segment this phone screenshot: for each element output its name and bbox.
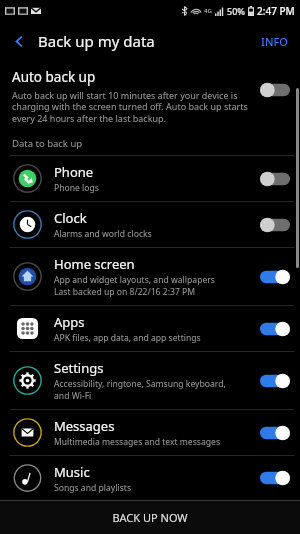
button[interactable]: Phone (0, 156, 300, 201)
button[interactable]: BACK UP NOW (0, 501, 300, 534)
staticText: Songs and playlists (54, 482, 131, 493)
staticText: Data to back up (12, 137, 83, 150)
staticText: 50% (227, 5, 245, 17)
button[interactable]: Apps (0, 306, 300, 351)
button[interactable]: Toggle off (260, 217, 290, 233)
staticText: and Wi-Fi (54, 390, 92, 402)
staticText: Auto back up (12, 68, 96, 86)
staticText: Alarms and world clocks (54, 228, 152, 240)
staticText: INFO (261, 34, 288, 49)
button[interactable]: Toggle on (260, 321, 290, 337)
button[interactable]: Toggle on (260, 470, 290, 486)
staticText: Settings (54, 359, 104, 377)
button[interactable]: Toggle off (260, 171, 290, 187)
button[interactable]: Clock (0, 202, 300, 247)
staticText: BACK UP NOW (112, 510, 188, 525)
button[interactable]: Messages (0, 410, 300, 455)
staticText: Back up my data (38, 31, 155, 51)
staticText: Accessibility, ringtone, Samsung keyboar… (54, 378, 226, 390)
staticText: 4G (204, 7, 212, 15)
staticText: Auto back up will start 10 minutes after… (12, 89, 254, 125)
staticText: Phone (54, 163, 94, 181)
button[interactable]: Toggle on (260, 425, 290, 441)
button[interactable]: Auto back up (0, 60, 300, 135)
button[interactable]: Home screen (0, 248, 300, 305)
staticText: Multimedia messages and text messages (54, 436, 220, 448)
staticText: APK files, app data, and app settings (54, 332, 201, 344)
button[interactable]: Toggle on (260, 373, 290, 389)
staticText: Apps (54, 313, 85, 331)
button[interactable]: Music (0, 456, 300, 500)
staticText: Home screen (54, 255, 135, 273)
staticText: 2:47 PM (257, 4, 295, 18)
button[interactable]: Settings (0, 352, 300, 409)
button[interactable]: Toggle off (260, 82, 290, 98)
staticText: Clock (54, 209, 87, 227)
staticText: Phone logs (54, 182, 99, 194)
staticText: Messages (54, 417, 115, 435)
button[interactable]: Back (0, 22, 38, 60)
staticText: Last backed up on 8/22/16 2:37 PM (54, 286, 196, 298)
button[interactable]: Toggle on (260, 269, 290, 285)
button[interactable]: INFO (249, 22, 300, 60)
staticText: Music (54, 463, 90, 481)
staticText: App and widget layouts, and wallpapers (54, 274, 215, 286)
